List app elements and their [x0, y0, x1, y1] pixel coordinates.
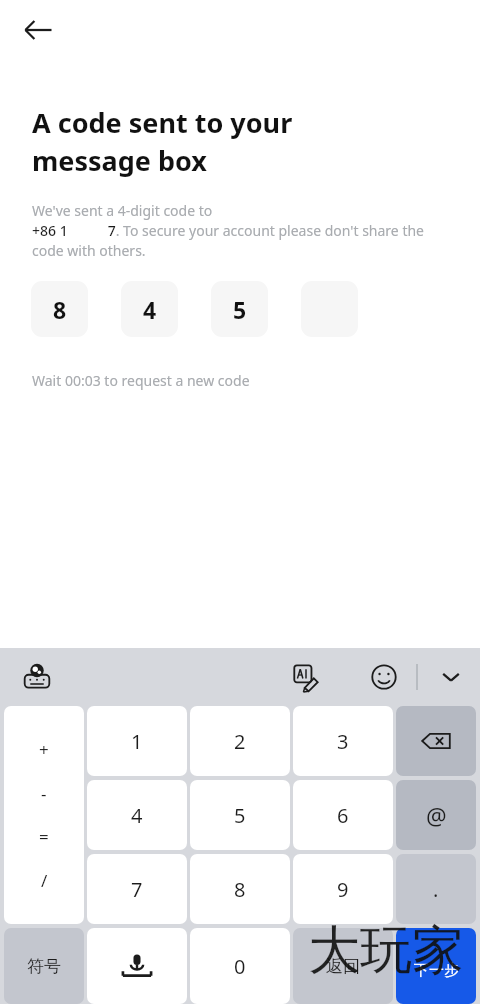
- button[interactable]: Digit 3: [211, 281, 268, 337]
- button[interactable]: Space: [87, 928, 187, 1004]
- button[interactable]: 符号: [4, 928, 84, 1004]
- staticText: 7: [131, 876, 143, 903]
- button[interactable]: At sign: [396, 780, 476, 850]
- button[interactable]: 6: [293, 780, 393, 850]
- staticText: 大玩家: [308, 918, 464, 984]
- button[interactable]: 3: [293, 706, 393, 776]
- staticText: 0: [234, 953, 246, 980]
- button[interactable]: Digit 1: [31, 281, 88, 337]
- button[interactable]: Hide keyboard: [428, 654, 474, 700]
- button[interactable]: 5: [190, 780, 290, 850]
- staticText: 返回: [326, 956, 360, 977]
- staticText: -: [41, 782, 47, 805]
- button[interactable]: Emoji: [361, 654, 407, 700]
- staticText: @: [426, 800, 447, 831]
- button[interactable]: 返回: [293, 928, 393, 1004]
- staticText: =: [39, 825, 49, 848]
- button[interactable]: 1: [87, 706, 187, 776]
- staticText: .: [433, 876, 439, 903]
- staticText: 2: [234, 728, 246, 755]
- button[interactable]: 0: [190, 928, 290, 1004]
- button[interactable]: Switch language: [14, 654, 60, 700]
- staticText: A code sent to your message box: [32, 104, 293, 179]
- staticText: 5: [233, 294, 247, 325]
- staticText: We've sent a 4-digit code to +86 1 7. To…: [32, 201, 450, 260]
- button[interactable]: Next: [396, 928, 476, 1004]
- button[interactable]: Symbols column: [4, 706, 84, 924]
- staticText: 5: [234, 802, 246, 829]
- staticText: 6: [337, 802, 349, 829]
- staticText: 3: [337, 728, 349, 755]
- staticText: 1: [131, 728, 143, 755]
- button[interactable]: 9: [293, 854, 393, 924]
- button[interactable]: Back: [14, 6, 62, 54]
- button[interactable]: 4: [87, 780, 187, 850]
- button[interactable]: 2: [190, 706, 290, 776]
- staticText: 4: [143, 294, 157, 325]
- staticText: +: [39, 738, 49, 761]
- staticText: 9: [337, 876, 349, 903]
- staticText: 8: [234, 876, 246, 903]
- button[interactable]: Backspace: [396, 706, 476, 776]
- button[interactable]: AI writing: [283, 654, 329, 700]
- button[interactable]: 8: [190, 854, 290, 924]
- staticText: 8: [53, 294, 67, 325]
- staticText: 符号: [27, 956, 61, 977]
- button[interactable]: Digit 2: [121, 281, 178, 337]
- button[interactable]: 7: [87, 854, 187, 924]
- staticText: /: [41, 869, 48, 892]
- staticText: 4: [131, 802, 143, 829]
- button[interactable]: .: [396, 854, 476, 924]
- button[interactable]: Wait 00:03 to request a new code: [32, 371, 250, 390]
- staticText: 下一步: [414, 961, 459, 980]
